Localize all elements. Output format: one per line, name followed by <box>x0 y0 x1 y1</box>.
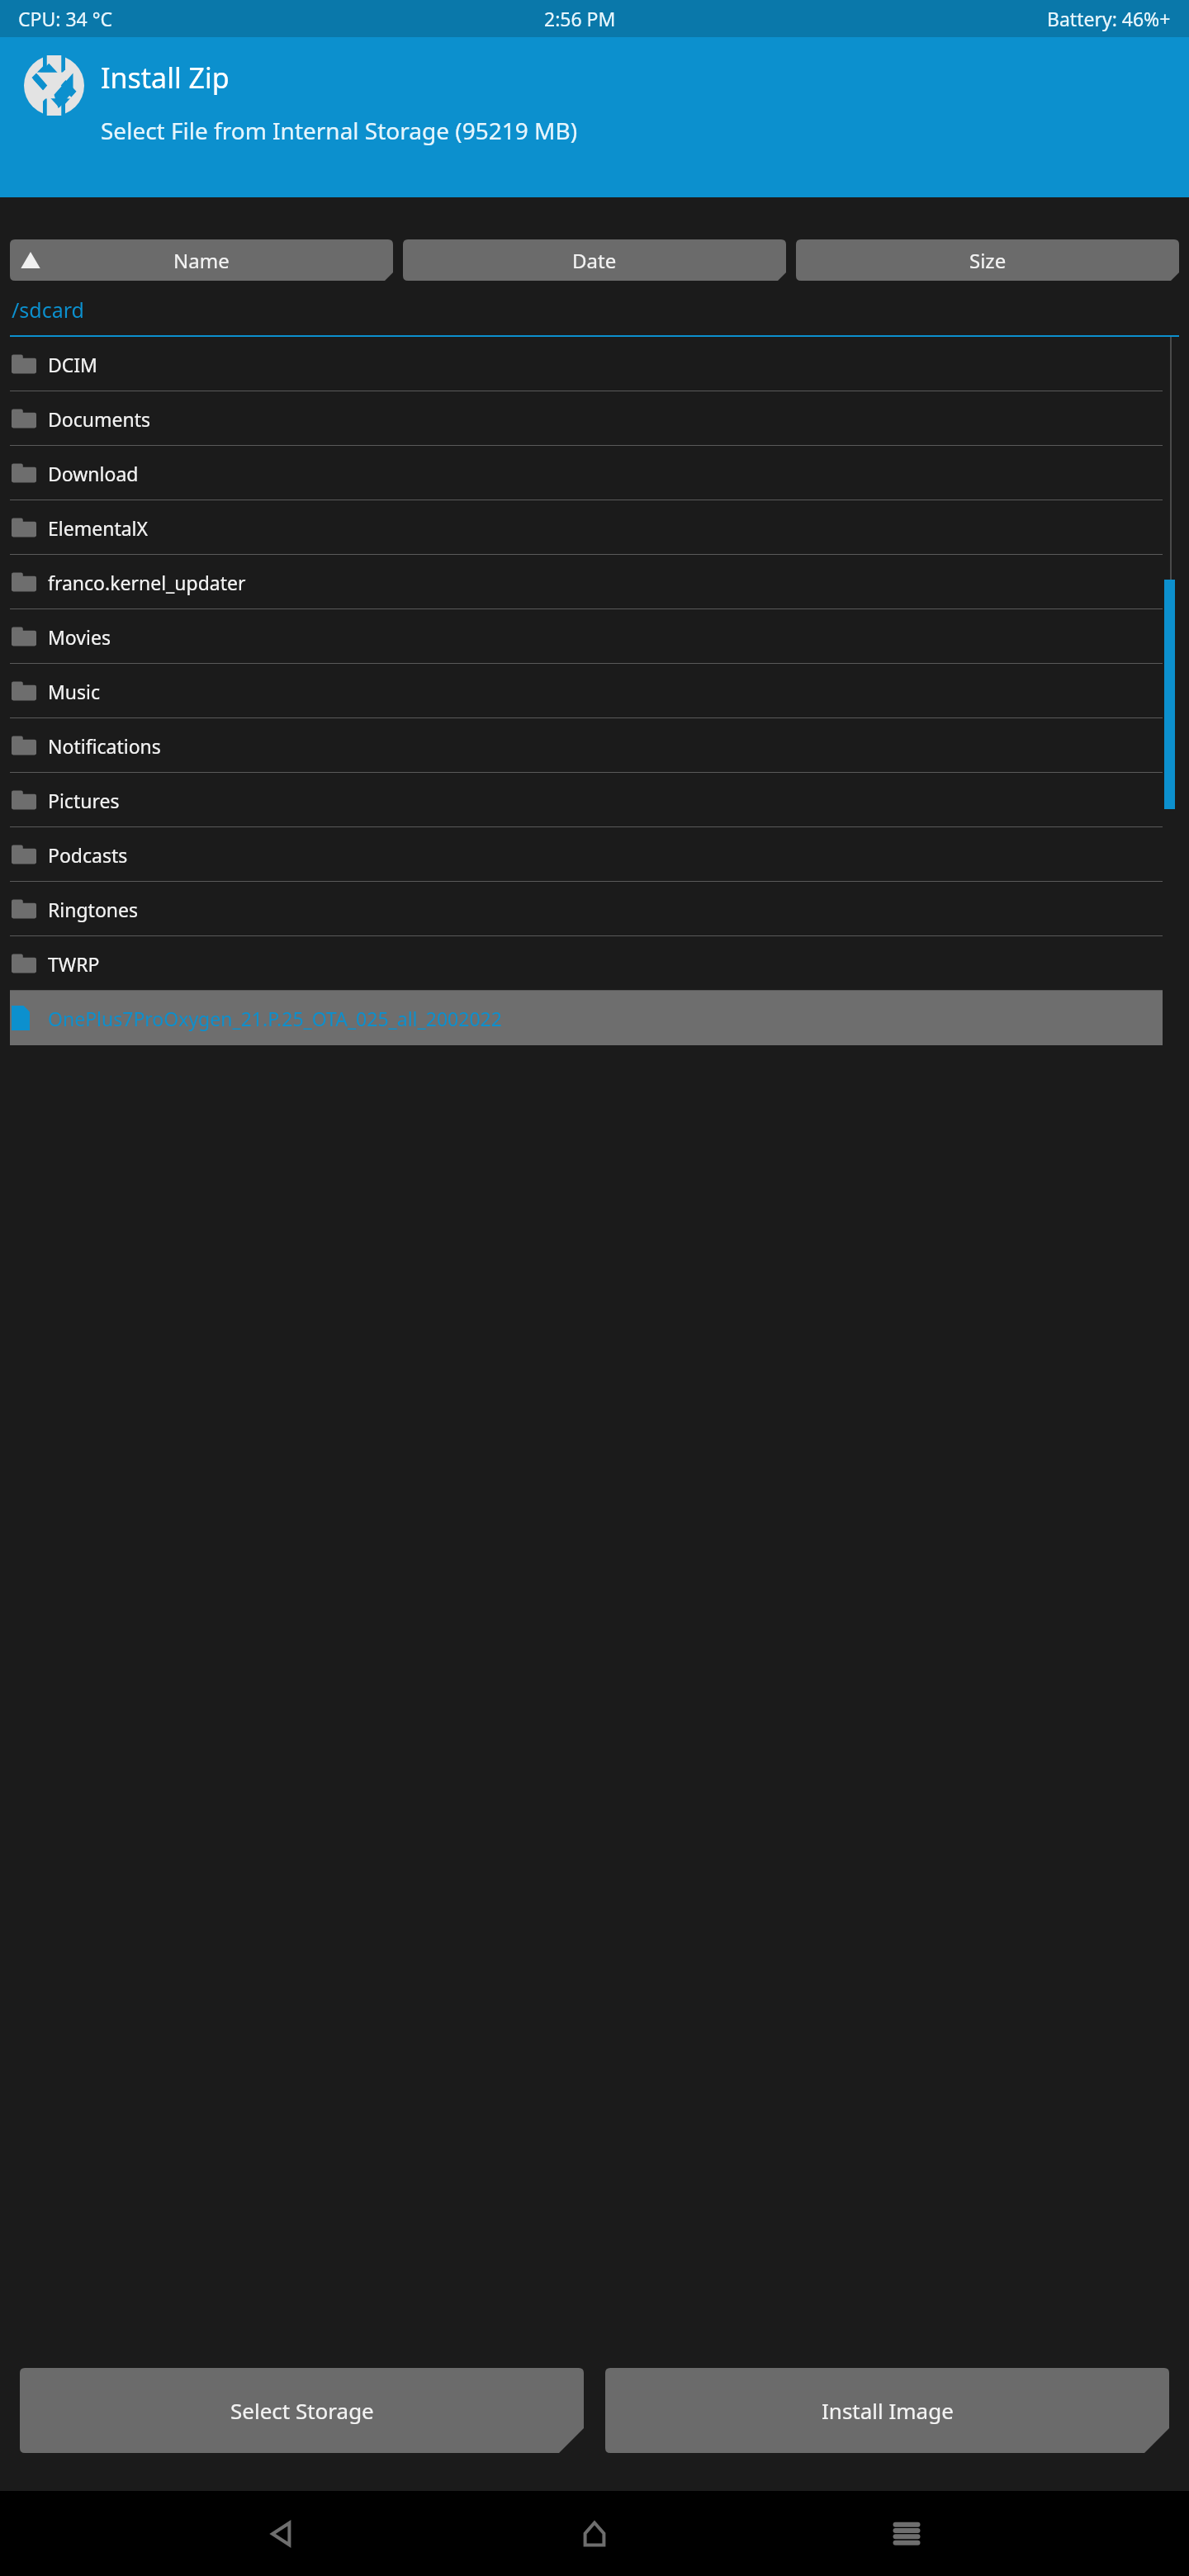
staticText: Podcasts <box>48 842 128 868</box>
staticText: franco.kernel_updater <box>48 570 246 595</box>
button[interactable]: franco.kernel_updater <box>10 555 1163 609</box>
button[interactable]: Notifications <box>10 718 1163 773</box>
button[interactable]: Install Image <box>605 2368 1169 2453</box>
staticText: OnePlus7ProOxygen_21.P.25_OTA_025_all_20… <box>48 1006 502 1031</box>
button[interactable]: Music <box>10 664 1163 718</box>
button[interactable]: Podcasts <box>10 827 1163 882</box>
button[interactable]: Back <box>253 2504 312 2564</box>
staticText: Documents <box>48 406 150 432</box>
button[interactable]: ElementalX <box>10 500 1163 555</box>
staticText: Size <box>969 247 1007 274</box>
staticText: /sdcard <box>12 296 84 324</box>
staticText: TWRP <box>48 951 100 977</box>
staticText: Select Storage <box>230 2396 374 2425</box>
button[interactable]: Movies <box>10 609 1163 664</box>
staticText: ElementalX <box>48 515 149 541</box>
button[interactable]: Menu <box>877 2504 936 2564</box>
button[interactable]: Home <box>565 2504 624 2564</box>
button[interactable]: Documents <box>10 391 1163 446</box>
button[interactable]: OnePlus7ProOxygen_21.P.25_OTA_025_all_20… <box>10 991 1163 1045</box>
button[interactable]: Size <box>796 239 1179 281</box>
staticText: Install Zip <box>101 59 230 97</box>
button[interactable]: Pictures <box>10 773 1163 827</box>
staticText: Ringtones <box>48 897 139 922</box>
staticText: Notifications <box>48 733 161 759</box>
button[interactable]: Ringtones <box>10 882 1163 936</box>
button[interactable]: Name <box>10 239 393 281</box>
button[interactable]: Date <box>403 239 786 281</box>
button[interactable]: Select Storage <box>20 2368 584 2453</box>
staticText: Movies <box>48 624 111 650</box>
staticText: CPU: 34 °C <box>18 6 113 31</box>
button[interactable]: Download <box>10 446 1163 500</box>
button[interactable]: DCIM <box>10 337 1163 391</box>
staticText: DCIM <box>48 352 97 377</box>
staticText: Pictures <box>48 788 120 813</box>
staticText: Music <box>48 679 101 704</box>
button[interactable]: TWRP <box>10 936 1163 991</box>
staticText: Install Image <box>822 2396 954 2425</box>
staticText: Select File from Internal Storage (95219… <box>101 115 578 146</box>
staticText: Battery: 46%+ <box>1047 6 1171 31</box>
staticText: Name <box>173 247 230 274</box>
staticText: Download <box>48 461 139 486</box>
staticText: 2:56 PM <box>544 6 616 31</box>
staticText: Date <box>572 247 617 274</box>
